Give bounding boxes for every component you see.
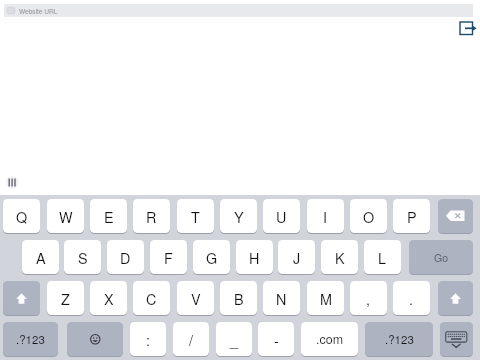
button[interactable]: - — [258, 322, 294, 357]
button[interactable]: Shift — [438, 281, 473, 316]
button[interactable]: W — [47, 199, 84, 234]
staticText: : — [146, 329, 151, 350]
staticText: Z — [61, 288, 70, 309]
staticText: O — [363, 206, 375, 227]
staticText: K — [335, 247, 345, 268]
button[interactable]: .com — [301, 322, 358, 357]
staticText: Y — [234, 206, 244, 227]
button[interactable]: B — [220, 281, 257, 316]
button[interactable]: Q — [3, 199, 40, 234]
staticText: V — [191, 288, 201, 309]
button[interactable]: J — [278, 240, 315, 275]
button[interactable]: Open in new window — [458, 20, 478, 36]
button[interactable]: C — [133, 281, 170, 316]
button[interactable]: .?123 — [3, 322, 58, 357]
button[interactable]: / — [173, 322, 209, 357]
staticText: X — [104, 288, 114, 309]
staticText: I — [323, 206, 328, 227]
staticText: G — [206, 247, 218, 268]
staticText: E — [104, 206, 114, 227]
staticText: Q — [16, 206, 28, 227]
staticText: U — [276, 206, 287, 227]
staticText: F — [164, 247, 173, 268]
staticText: / — [189, 329, 194, 350]
button[interactable]: Shift — [3, 281, 40, 316]
button[interactable]: Y — [220, 199, 257, 234]
staticText: P — [407, 206, 417, 227]
button[interactable]: , — [350, 281, 387, 316]
button[interactable]: I — [307, 199, 344, 234]
button[interactable]: _ — [216, 322, 252, 357]
staticText: . — [409, 288, 414, 309]
staticText: T — [191, 206, 200, 227]
button[interactable]: .?123 — [365, 322, 433, 357]
staticText: .com — [316, 330, 344, 348]
button[interactable]: L — [364, 240, 401, 275]
button[interactable]: H — [236, 240, 273, 275]
button[interactable]: M — [307, 281, 344, 316]
button[interactable]: G — [193, 240, 230, 275]
staticText: , — [366, 288, 371, 309]
button[interactable]: P — [393, 199, 430, 234]
staticText: .?123 — [16, 331, 45, 347]
staticText: .?123 — [385, 331, 414, 347]
button[interactable]: Emoji — [67, 322, 123, 357]
staticText: N — [276, 288, 287, 309]
button[interactable]: Keyboard options — [8, 177, 17, 188]
button[interactable]: F — [150, 240, 187, 275]
staticText: J — [293, 247, 301, 268]
staticText: B — [234, 288, 244, 309]
button[interactable]: E — [90, 199, 127, 234]
button[interactable]: K — [321, 240, 358, 275]
staticText: C — [146, 288, 157, 309]
button[interactable]: . — [393, 281, 430, 316]
button[interactable]: Z — [47, 281, 84, 316]
button[interactable]: Website URL — [4, 4, 473, 17]
staticText: Go — [434, 250, 449, 265]
staticText: H — [249, 247, 260, 268]
staticText: A — [36, 247, 46, 268]
staticText: D — [120, 247, 131, 268]
button[interactable]: A — [22, 240, 59, 275]
button[interactable]: : — [130, 322, 166, 357]
button[interactable]: R — [133, 199, 170, 234]
button[interactable]: O — [350, 199, 387, 234]
staticText: W — [59, 206, 73, 227]
button[interactable]: Backspace — [438, 199, 473, 234]
button[interactable]: X — [90, 281, 127, 316]
staticText: M — [320, 288, 332, 309]
staticText: S — [78, 247, 88, 268]
staticText: - — [274, 329, 279, 350]
button[interactable]: D — [107, 240, 144, 275]
button[interactable]: N — [263, 281, 300, 316]
button[interactable]: T — [177, 199, 214, 234]
button[interactable]: U — [263, 199, 300, 234]
button[interactable]: V — [177, 281, 214, 316]
button[interactable]: Hide keyboard — [440, 322, 473, 357]
staticText: L — [378, 247, 387, 268]
staticText: _ — [230, 329, 239, 350]
button[interactable]: S — [64, 240, 101, 275]
staticText: R — [146, 206, 157, 227]
button[interactable]: Go — [409, 240, 473, 275]
staticText: Website URL — [19, 6, 58, 15]
